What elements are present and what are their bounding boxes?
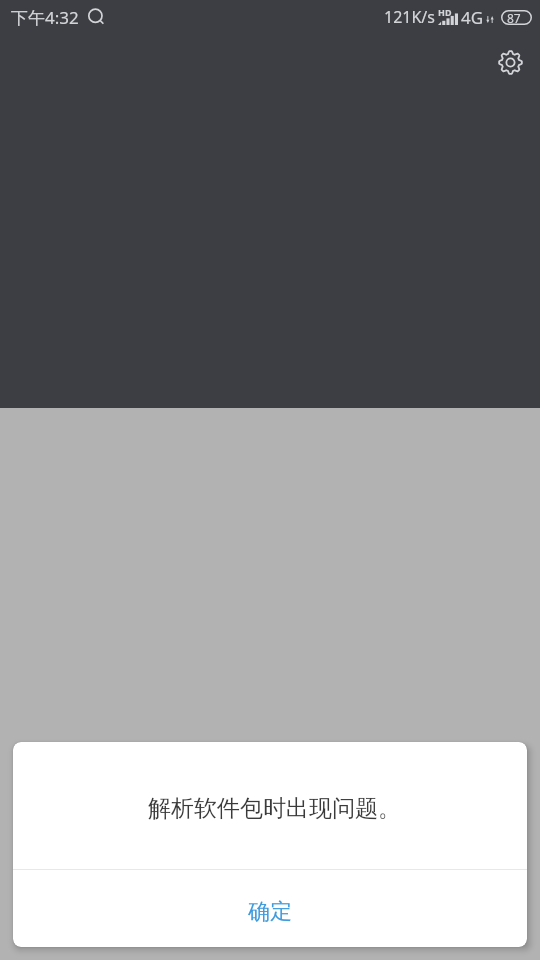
staticText: 解析软件包时出现问题。: [148, 794, 401, 823]
staticText: 121K/s: [384, 6, 435, 28]
button[interactable]: Search: [87, 8, 105, 26]
button[interactable]: Settings: [490, 42, 530, 82]
staticText: 87: [507, 10, 521, 25]
staticText: 确定: [248, 898, 292, 926]
staticText: 下午4:32: [11, 6, 79, 29]
staticText: HD: [438, 6, 452, 18]
staticText: 4G: [461, 6, 484, 29]
button[interactable]: 确定: [13, 870, 527, 947]
